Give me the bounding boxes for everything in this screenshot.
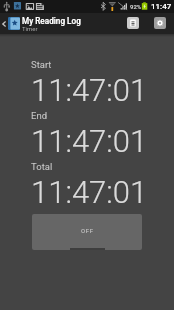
button[interactable]: OFF (32, 214, 142, 250)
staticText: My Reading Log (22, 16, 81, 26)
staticText: 11:47:01 (31, 72, 148, 108)
button[interactable]: Notes (127, 17, 139, 29)
button[interactable]: Back (0, 13, 8, 34)
staticText: 92% (130, 3, 142, 10)
staticText: Total (31, 161, 53, 172)
staticText: Start (31, 59, 52, 70)
staticText: 11:47:01 (31, 123, 148, 159)
button[interactable]: Settings (154, 17, 166, 29)
staticText: 11:47 (151, 2, 172, 11)
staticText: Timer (22, 25, 38, 32)
staticText: 11:47:01 (31, 174, 148, 210)
staticText: End (31, 110, 48, 121)
staticText: OFF (81, 227, 94, 234)
